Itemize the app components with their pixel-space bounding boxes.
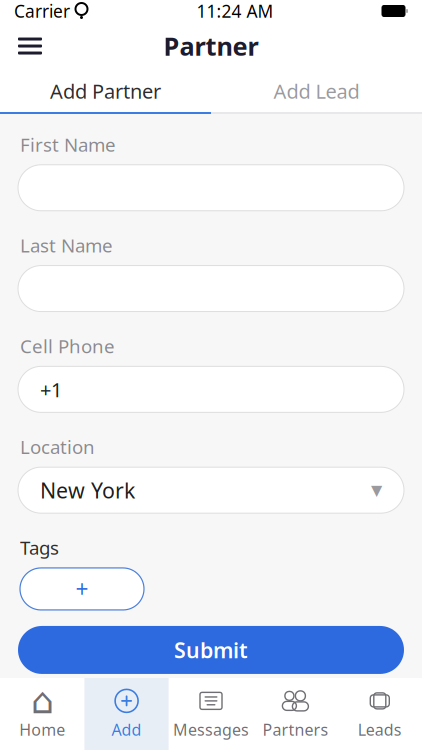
button[interactable]: Messages bbox=[169, 678, 253, 750]
button[interactable]: Partners bbox=[253, 678, 338, 750]
button[interactable]: Menu bbox=[10, 29, 50, 62]
staticText: Location bbox=[20, 434, 95, 459]
staticText: +1 bbox=[40, 376, 62, 403]
staticText: Partner bbox=[163, 29, 258, 63]
button[interactable]: Add bbox=[84, 678, 169, 750]
staticText: New York bbox=[40, 476, 135, 504]
button[interactable]: New York bbox=[0, 467, 422, 513]
staticText: Cell Phone bbox=[20, 334, 115, 358]
staticText: Home bbox=[19, 719, 65, 740]
button[interactable]: ⌂ bbox=[0, 678, 84, 750]
button[interactable]: Leads bbox=[338, 678, 422, 750]
staticText: Leads bbox=[358, 719, 402, 740]
staticText: Add Partner bbox=[50, 78, 161, 104]
button[interactable]: Add Lead bbox=[211, 70, 422, 112]
staticText: Partners bbox=[262, 719, 328, 740]
staticText: Submit bbox=[174, 636, 248, 664]
staticText: Carrier bbox=[14, 0, 70, 22]
staticText: ⌂ bbox=[31, 680, 54, 721]
staticText: + bbox=[75, 574, 88, 604]
staticText: ▼ bbox=[371, 482, 382, 498]
button[interactable]: Add tag bbox=[20, 568, 144, 610]
staticText: First Name bbox=[20, 132, 116, 157]
button[interactable]: Add Partner bbox=[0, 70, 211, 112]
staticText: Tags bbox=[20, 535, 59, 560]
staticText: 11:24 AM bbox=[196, 0, 273, 22]
staticText: Add Lead bbox=[273, 78, 359, 104]
button[interactable]: Submit bbox=[18, 626, 404, 674]
staticText: Add bbox=[112, 719, 142, 740]
staticText: Last Name bbox=[20, 233, 113, 258]
staticText: Messages bbox=[173, 719, 249, 740]
